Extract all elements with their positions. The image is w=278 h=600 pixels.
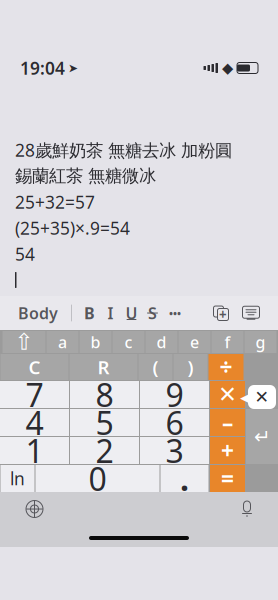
button[interactable]: a bbox=[46, 331, 78, 353]
button[interactable]: e bbox=[178, 331, 210, 353]
button[interactable]: Add attachment bbox=[206, 296, 236, 330]
staticText: f bbox=[224, 331, 230, 353]
button[interactable]: Dictation bbox=[234, 493, 260, 525]
staticText: 6 bbox=[165, 401, 183, 444]
staticText: 0 bbox=[88, 457, 106, 500]
button[interactable]: – bbox=[210, 409, 245, 436]
staticText: – bbox=[222, 407, 233, 437]
staticText: ••• bbox=[169, 306, 181, 320]
button[interactable]: 6 bbox=[140, 409, 209, 436]
button[interactable]: S bbox=[142, 296, 163, 330]
staticText: b bbox=[90, 331, 100, 353]
staticText: I bbox=[107, 302, 113, 324]
staticText: c bbox=[124, 331, 132, 353]
button[interactable]: 2 bbox=[70, 437, 139, 464]
button[interactable]: b bbox=[79, 331, 111, 353]
button[interactable]: Hide keyboard bbox=[236, 296, 266, 330]
staticText: ) bbox=[187, 355, 193, 379]
button[interactable]: B bbox=[79, 296, 100, 330]
button[interactable]: g bbox=[244, 331, 276, 353]
staticText: 25+32=57 bbox=[15, 190, 95, 213]
staticText: 8 bbox=[95, 373, 113, 416]
button[interactable]: 9 bbox=[140, 381, 209, 408]
button[interactable]: Shift bbox=[2, 331, 45, 353]
button[interactable]: 4 bbox=[0, 409, 69, 436]
button[interactable]: 7 bbox=[0, 381, 69, 408]
button[interactable]: I bbox=[100, 296, 121, 330]
button[interactable]: Return bbox=[246, 409, 278, 464]
staticText: 1 bbox=[25, 429, 43, 472]
button[interactable]: Switch keyboard bbox=[18, 492, 51, 525]
button[interactable]: = bbox=[210, 465, 245, 492]
staticText: U bbox=[125, 302, 137, 324]
button[interactable]: Delete bbox=[236, 385, 278, 409]
staticText: 5 bbox=[95, 401, 113, 444]
staticText: 錫蘭紅茶 無糖微冰 bbox=[15, 165, 156, 187]
button[interactable]: ) bbox=[173, 354, 207, 380]
staticText: . bbox=[180, 457, 189, 500]
staticText: R bbox=[97, 355, 109, 379]
button[interactable]: . bbox=[160, 465, 208, 492]
staticText: (25+35)×.9=54 bbox=[15, 216, 130, 239]
staticText: ➤ bbox=[68, 61, 78, 75]
button[interactable]: + bbox=[210, 437, 245, 464]
staticText: ✕ bbox=[218, 382, 237, 407]
staticText: ÷ bbox=[219, 352, 232, 382]
staticText: B bbox=[84, 302, 95, 324]
staticText: C bbox=[28, 355, 40, 379]
button[interactable]: ( bbox=[138, 354, 172, 380]
staticText: 19:04 bbox=[20, 56, 65, 79]
staticText: a bbox=[58, 331, 67, 353]
button[interactable]: C bbox=[0, 354, 68, 380]
staticText: 2 bbox=[95, 429, 113, 472]
button[interactable]: ✕ bbox=[210, 381, 245, 408]
button[interactable]: ln bbox=[0, 465, 34, 492]
staticText: ✕ bbox=[254, 387, 269, 407]
button[interactable]: f bbox=[211, 331, 243, 353]
staticText: 9 bbox=[165, 373, 183, 416]
staticText: e bbox=[190, 331, 199, 353]
button[interactable]: 8 bbox=[70, 381, 139, 408]
staticText: g bbox=[255, 331, 265, 353]
button[interactable]: 0 bbox=[35, 465, 159, 492]
staticText: = bbox=[221, 463, 234, 493]
staticText: S bbox=[148, 302, 157, 324]
button[interactable]: ••• bbox=[163, 296, 187, 330]
staticText: ◀ bbox=[240, 386, 254, 408]
button[interactable]: R bbox=[69, 354, 137, 380]
staticText: ln bbox=[10, 467, 25, 490]
button[interactable]: 3 bbox=[140, 437, 209, 464]
staticText: Body bbox=[18, 302, 58, 324]
button[interactable]: d bbox=[145, 331, 177, 353]
staticText: 4 bbox=[25, 401, 43, 444]
button[interactable]: c bbox=[112, 331, 144, 353]
button[interactable]: U bbox=[121, 296, 142, 330]
staticText: 28歲鮮奶茶 無糖去冰 加粉圓 bbox=[15, 138, 232, 161]
button[interactable]: Body bbox=[12, 296, 64, 330]
staticText: 7 bbox=[25, 373, 43, 416]
staticText: ( bbox=[152, 355, 158, 379]
button[interactable]: 5 bbox=[70, 409, 139, 436]
staticText: 3 bbox=[165, 429, 183, 472]
staticText: ⇧ bbox=[14, 329, 33, 355]
button[interactable]: ÷ bbox=[208, 354, 243, 380]
staticText: d bbox=[156, 331, 166, 353]
button[interactable]: 1 bbox=[0, 437, 69, 464]
staticText: + bbox=[221, 435, 234, 465]
staticText: ◆ bbox=[222, 60, 233, 76]
staticText: 54 bbox=[15, 242, 35, 265]
staticText: + bbox=[219, 306, 227, 323]
staticText: ↵ bbox=[254, 425, 271, 448]
